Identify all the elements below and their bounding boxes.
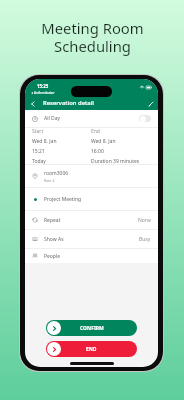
staticText: Wed 8. Jan bbox=[91, 138, 116, 145]
staticText: None bbox=[138, 217, 151, 224]
button[interactable]: END bbox=[46, 341, 137, 357]
staticText: Authenticator bbox=[34, 91, 55, 95]
staticText: room3006 bbox=[44, 170, 69, 177]
staticText: All Day bbox=[44, 115, 61, 122]
staticText: CONFIRM bbox=[80, 325, 104, 332]
staticText: 16:00 bbox=[91, 148, 104, 155]
staticText: People bbox=[44, 253, 61, 260]
staticText: floor 2 bbox=[44, 178, 55, 183]
button[interactable]: Repeat bbox=[25, 211, 158, 229]
button[interactable]: All day toggle bbox=[139, 115, 151, 122]
button[interactable]: CONFIRM bbox=[46, 320, 137, 336]
button[interactable]: All Day bbox=[25, 110, 158, 127]
button[interactable]: room3006 bbox=[25, 165, 158, 187]
staticText: Repeat bbox=[44, 217, 61, 224]
staticText: Reservation detail bbox=[43, 99, 94, 107]
staticText: END bbox=[86, 346, 97, 353]
staticText: Project Meeting bbox=[44, 196, 82, 203]
staticText: Meeting Room Scheduling bbox=[41, 18, 144, 56]
staticText: Start bbox=[32, 128, 44, 135]
staticText: 15:25 bbox=[37, 83, 49, 89]
button[interactable]: Back bbox=[28, 99, 37, 108]
staticText: 15:21 bbox=[32, 148, 45, 155]
staticText: Show As bbox=[44, 236, 64, 243]
staticText: Duration 39 minutes bbox=[91, 158, 140, 164]
staticText: Today bbox=[32, 158, 46, 164]
button[interactable]: Show As bbox=[25, 230, 158, 248]
staticText: End bbox=[91, 128, 100, 135]
button[interactable]: People bbox=[25, 249, 158, 263]
button[interactable]: Edit bbox=[146, 99, 155, 108]
staticText: Wed 8. Jan bbox=[32, 138, 57, 145]
button[interactable]: Project Meeting bbox=[25, 188, 158, 210]
staticText: Busy bbox=[139, 236, 151, 243]
